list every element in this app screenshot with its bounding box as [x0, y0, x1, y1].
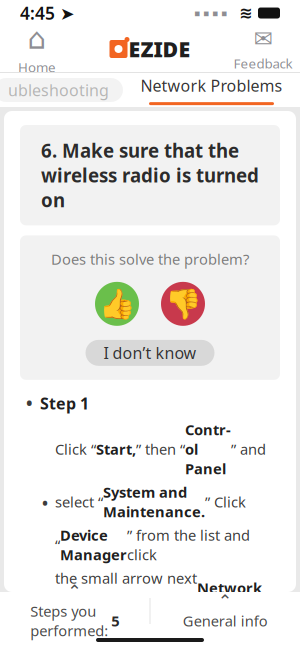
button[interactable]: ⌃ — [150, 593, 300, 629]
staticText: Does this solve the problem? — [51, 249, 249, 269]
button[interactable]: Yes this solves the problem — [95, 282, 139, 326]
staticText: EZIDE — [128, 35, 190, 63]
button[interactable]: ✉ — [232, 27, 294, 71]
staticText: ⌂ — [27, 22, 46, 55]
staticText: General info — [183, 611, 268, 631]
staticText: 4:45 ➤ — [20, 1, 75, 24]
button[interactable]: Network Problems — [140, 75, 282, 105]
staticText: ▪ ▪ ▪ ▪ — [194, 8, 227, 18]
staticText: ≋ — [239, 4, 252, 22]
staticText: • — [26, 392, 33, 415]
staticText: Step 1 — [40, 393, 89, 414]
staticText: ” to display the list of devices. — [120, 611, 263, 649]
staticText: ” from the list and click — [127, 525, 250, 564]
staticText: ✉ — [253, 26, 272, 51]
staticText: 👍 — [98, 287, 135, 321]
button[interactable]: I don’t know — [85, 340, 214, 366]
staticText: Click “ — [55, 439, 96, 459]
staticText: 5 — [111, 611, 119, 631]
staticText: System and Maintenance. — [103, 482, 205, 521]
staticText: ⌃ — [67, 582, 82, 601]
staticText: Control Panel — [185, 420, 231, 478]
staticText: I don’t know — [103, 342, 196, 363]
staticText: Start, — [96, 439, 136, 459]
staticText: “ — [55, 535, 60, 554]
staticText: the small arrow next to “ — [55, 568, 197, 607]
staticText: 6. Make sure that the wireless radio is … — [41, 138, 259, 212]
staticText: Network Problems — [140, 75, 282, 96]
staticText: Feedback — [233, 54, 292, 72]
staticText: ” and — [231, 439, 266, 459]
staticText: Home — [18, 58, 56, 76]
staticText: • — [42, 492, 48, 513]
staticText: 👎 — [164, 287, 201, 321]
button[interactable]: ubleshooting — [0, 78, 123, 102]
staticText: ” Click — [205, 492, 246, 511]
staticText: Steps you performed: — [30, 601, 108, 640]
staticText: Network — [197, 578, 262, 597]
staticText: ” then “ — [136, 439, 185, 459]
staticText: Device Manager — [60, 525, 127, 564]
staticText: ⌃ — [218, 591, 233, 611]
staticText: ubleshooting — [8, 79, 109, 101]
button[interactable]: No this does not solve the problem — [161, 282, 205, 326]
staticText: adapters — [55, 621, 120, 640]
button[interactable]: ⌃ — [0, 593, 149, 629]
button[interactable]: ⌂ — [6, 27, 68, 71]
staticText: select “ — [55, 492, 103, 511]
